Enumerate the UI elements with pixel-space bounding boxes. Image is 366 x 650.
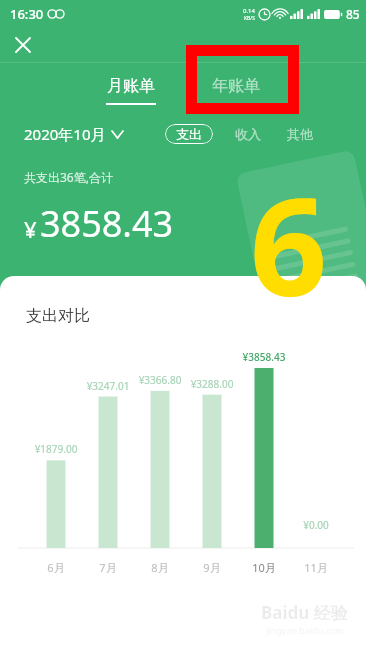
staticText: 其他 (287, 126, 313, 142)
staticText: ¥3858.43 (234, 350, 294, 364)
staticText: ¥3366.80 (130, 373, 190, 387)
button[interactable]: Close (6, 28, 40, 62)
staticText: 0.14 (243, 7, 255, 15)
staticText: jingyan.baidu.com (266, 624, 344, 636)
staticText: 10月 (239, 560, 289, 575)
staticText: 6月 (31, 560, 81, 575)
staticText: ¥3288.00 (182, 377, 242, 391)
staticText: 16:30 (10, 5, 44, 23)
staticText: 6 (250, 152, 328, 302)
staticText: 2020年10月 (24, 124, 106, 144)
staticText: ¥3247.01 (78, 379, 138, 393)
button[interactable]: 收入 (231, 124, 265, 144)
button[interactable]: 年账单 (206, 76, 266, 105)
button[interactable]: 其他 (283, 124, 317, 144)
staticText: 年账单 (212, 76, 260, 96)
staticText: 7月 (83, 560, 133, 575)
staticText: ¥1879.00 (26, 442, 86, 456)
staticText: 9月 (187, 560, 237, 575)
staticText: 85 (346, 6, 360, 22)
staticText: KB/S (244, 15, 255, 22)
staticText: ¥0.00 (286, 518, 346, 532)
staticText: Baidu 经验 (261, 601, 348, 624)
staticText: 11月 (291, 560, 341, 575)
button[interactable]: 2020年10月 (24, 124, 123, 144)
button[interactable]: 月账单 (100, 76, 162, 105)
button[interactable]: 支出 (165, 124, 213, 144)
staticText: 支出对比 (26, 306, 90, 326)
staticText: 收入 (235, 126, 261, 142)
staticText: 共支出36笔,合计 (24, 169, 113, 185)
staticText: 3858.43 (40, 199, 174, 248)
staticText: 支出 (176, 126, 202, 142)
staticText: ¥ (24, 214, 37, 244)
staticText: 8月 (135, 560, 185, 575)
staticText: 月账单 (107, 76, 155, 96)
